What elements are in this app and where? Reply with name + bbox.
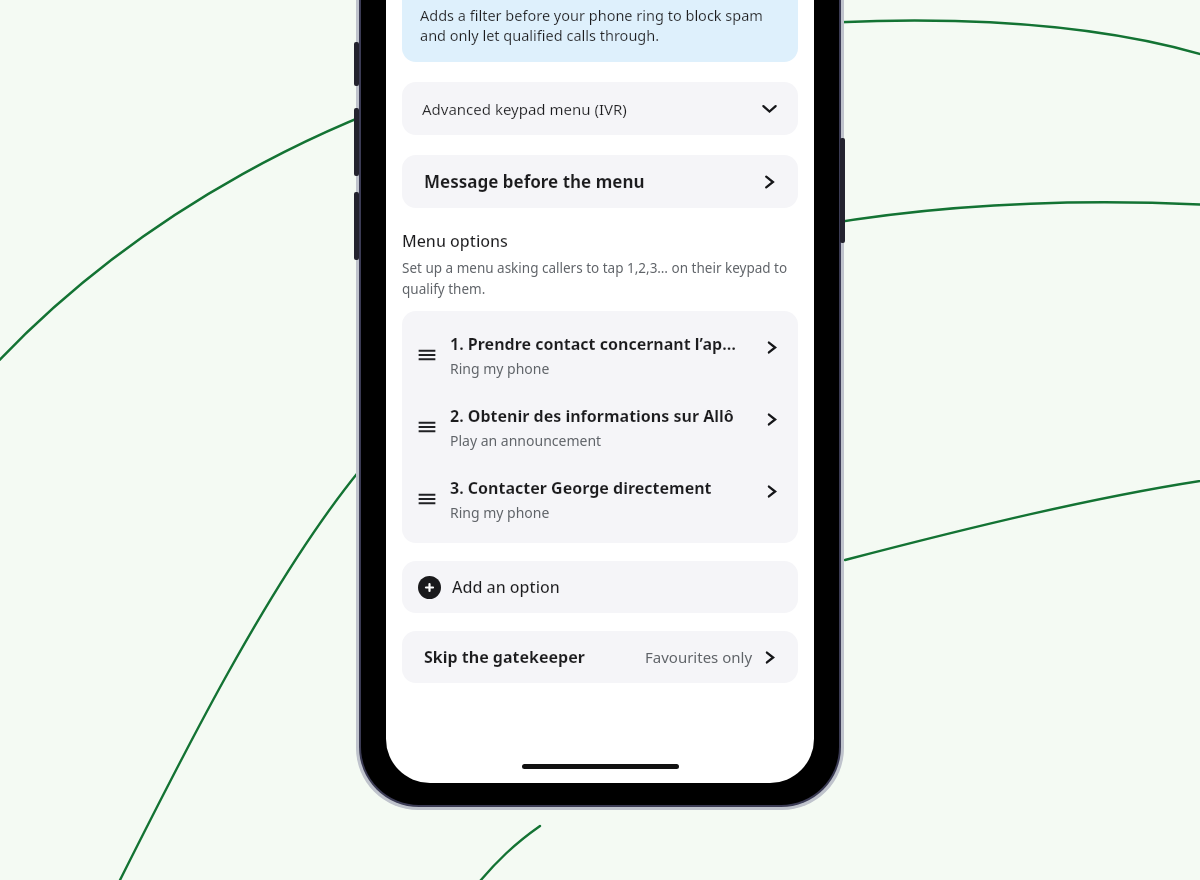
- other: Open: [765, 485, 778, 498]
- staticText: 2. Obtenir des informations sur Allô: [450, 405, 734, 427]
- other: Open: [765, 341, 778, 354]
- other: Open: [765, 413, 778, 426]
- button[interactable]: Advanced keypad menu (IVR): [402, 82, 798, 135]
- staticText: Set up a menu asking callers to tap 1,2,…: [402, 259, 798, 298]
- button[interactable]: Add an option: [402, 561, 798, 613]
- staticText: Favourites only: [645, 647, 753, 667]
- staticText: Ring my phone: [450, 359, 550, 378]
- staticText: 1. Prendre contact concernant l’ap…: [450, 333, 736, 355]
- staticText: Advanced keypad menu (IVR): [422, 99, 761, 119]
- other: Open: [762, 175, 776, 189]
- staticText: 3. Contacter George directement: [450, 477, 712, 499]
- staticText: Adds a filter before your phone ring to …: [420, 5, 780, 46]
- staticText: Menu options: [402, 230, 508, 252]
- other: Expand: [761, 100, 778, 117]
- staticText: Message before the menu: [424, 170, 762, 193]
- staticText: Add an option: [452, 576, 560, 598]
- button[interactable]: Reorder: [402, 463, 798, 535]
- button[interactable]: Message before the menu: [402, 155, 798, 208]
- other: Reorder: [416, 416, 438, 438]
- button[interactable]: Reorder: [402, 319, 798, 391]
- staticText: Skip the gatekeeper: [424, 646, 645, 668]
- other: Open: [763, 651, 776, 664]
- staticText: Ring my phone: [450, 503, 550, 522]
- button[interactable]: Reorder: [402, 391, 798, 463]
- other: Reorder: [416, 344, 438, 366]
- other: Reorder: [416, 488, 438, 510]
- button[interactable]: Skip the gatekeeper: [402, 631, 798, 683]
- staticText: Play an announcement: [450, 431, 602, 450]
